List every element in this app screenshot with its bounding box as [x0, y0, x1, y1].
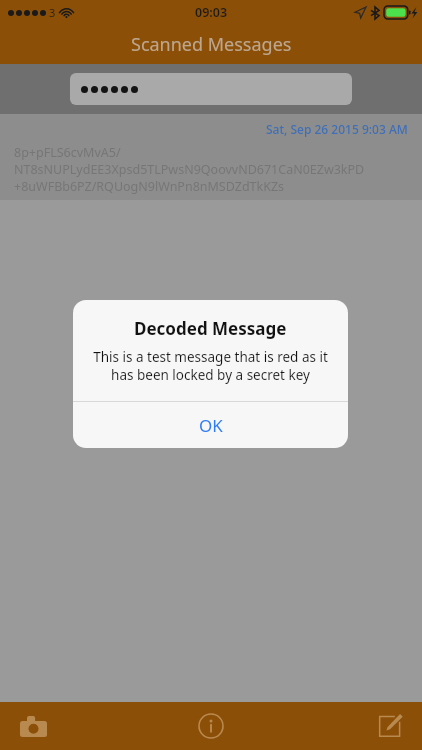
- staticText: 8p+pFLS6cvMvA5/: [14, 144, 121, 161]
- staticText: This is a test message that is red as it…: [87, 348, 334, 384]
- staticText: 09:03: [195, 4, 228, 21]
- button[interactable]: Secret key field: [70, 73, 352, 105]
- staticText: Scanned Messages: [131, 32, 292, 57]
- staticText: Sat, Sep 26 2015 9:03 AM: [266, 121, 408, 137]
- staticText: NT8sNUPLydEE3Xpsd5TLPwsN9QoovvND671CaN0E…: [14, 161, 365, 178]
- button[interactable]: Sat, Sep 26 2015 9:03 AM: [0, 114, 422, 200]
- staticText: 3: [49, 5, 56, 20]
- staticText: Decoded Message: [134, 317, 287, 340]
- staticText: OK: [199, 414, 223, 437]
- staticText: +8uWFBb6PZ/RQUogN9lWnPn8nMSDZdTkKZs: [14, 178, 285, 195]
- button[interactable]: Scan with camera: [0, 702, 140, 750]
- button[interactable]: Info: [140, 702, 281, 750]
- button[interactable]: Compose message: [281, 702, 422, 750]
- button[interactable]: OK: [73, 402, 348, 448]
